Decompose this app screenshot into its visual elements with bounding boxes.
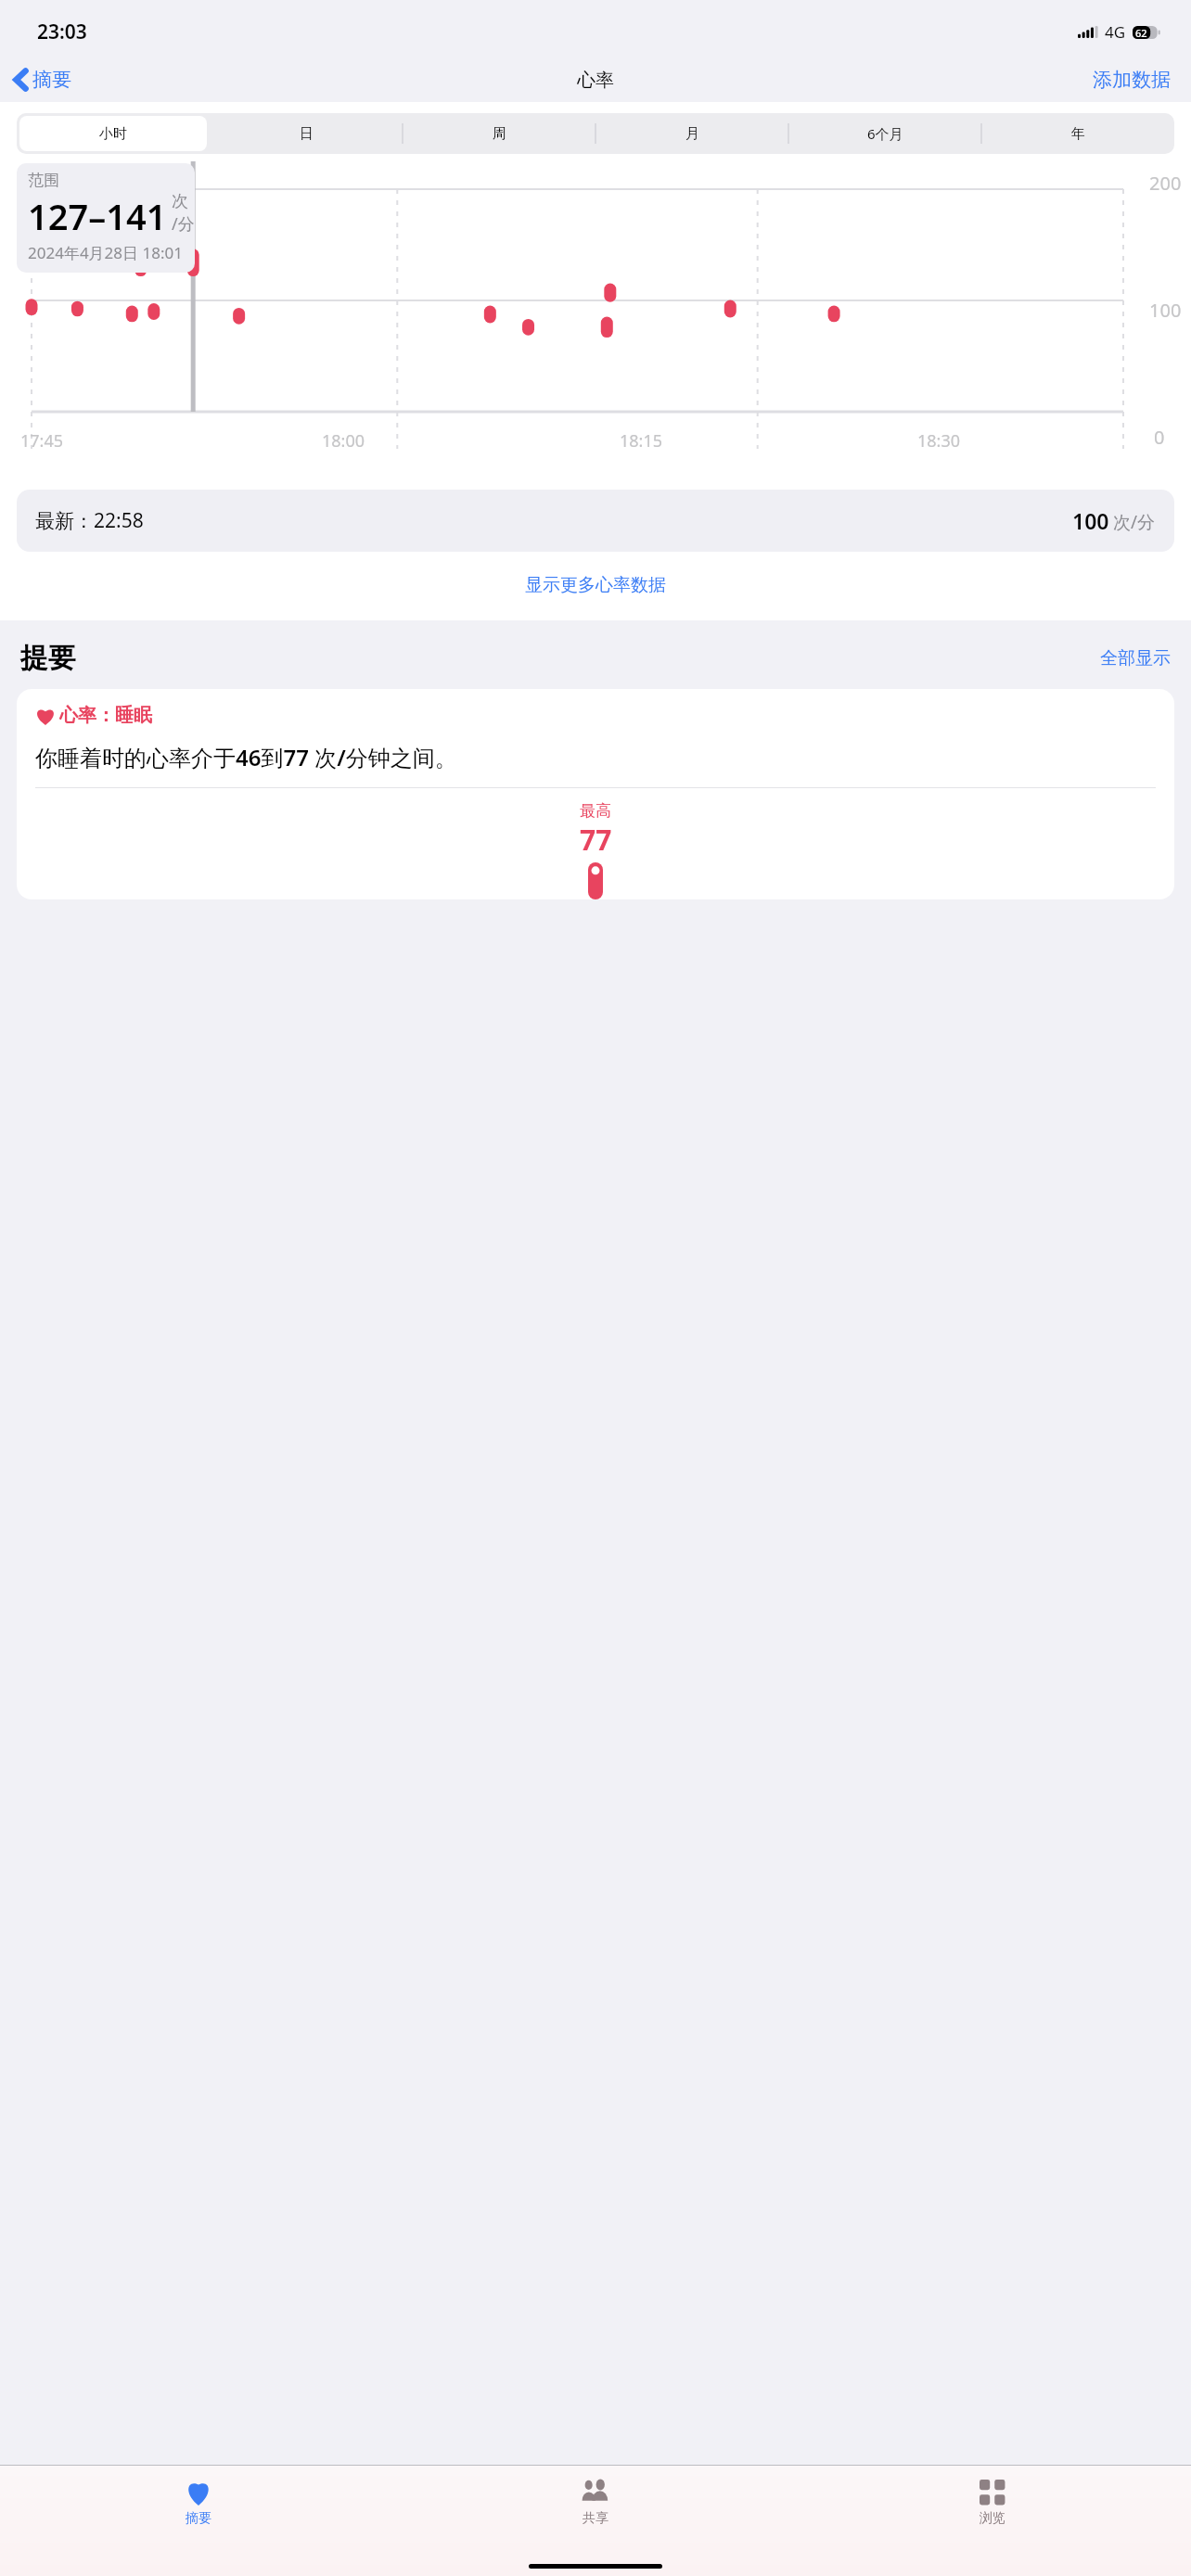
button[interactable]: 年 — [984, 116, 1172, 151]
button[interactable]: 全部显示 — [1100, 647, 1171, 670]
staticText: 次/分 — [172, 191, 186, 236]
button[interactable]: 显示更多心率数据 — [0, 568, 1191, 602]
staticText: 17:45 — [20, 429, 64, 453]
staticText: 0 — [1154, 425, 1165, 450]
staticText: 月 — [685, 125, 699, 143]
staticText: 127–141 — [28, 192, 167, 240]
staticText: 100 — [1072, 506, 1109, 535]
staticText: 2024年4月28日 18:01 — [28, 242, 183, 263]
staticText: 你睡着时的心率介于46到77 次/分钟之间。 — [35, 742, 457, 772]
staticText: 18:30 — [917, 429, 961, 453]
staticText: 共享 — [583, 2510, 608, 2527]
staticText: 日 — [300, 125, 314, 143]
button[interactable]: 共享 — [397, 2474, 794, 2531]
staticText: 62 — [1135, 26, 1147, 39]
staticText: 小时 — [99, 125, 127, 143]
staticText: 添加数据 — [1093, 68, 1171, 92]
button[interactable]: 心率：睡眠 — [17, 689, 1174, 899]
staticText: 年 — [1071, 125, 1085, 143]
button[interactable]: 日 — [212, 116, 400, 151]
staticText: 200 — [1149, 171, 1182, 196]
staticText: 23:03 — [37, 19, 87, 45]
staticText: 心率：睡眠 — [59, 704, 152, 727]
staticText: 最新：22:58 — [35, 507, 144, 534]
button[interactable]: 小时 — [19, 116, 207, 151]
staticText: 周 — [493, 125, 506, 143]
staticText: 6个月 — [867, 124, 903, 143]
staticText: 全部显示 — [1100, 647, 1171, 670]
staticText: 心率 — [577, 69, 614, 92]
staticText: 18:00 — [322, 429, 365, 453]
staticText: 显示更多心率数据 — [525, 574, 666, 596]
staticText: 77 — [580, 821, 612, 859]
staticText: 最高 — [580, 801, 611, 821]
staticText: 提要 — [20, 641, 76, 676]
staticText: 100 — [1149, 298, 1182, 323]
staticText: 浏览 — [980, 2510, 1005, 2527]
button[interactable]: 6个月 — [791, 116, 979, 151]
button[interactable]: 浏览 — [794, 2474, 1191, 2531]
button[interactable]: 添加数据 — [1093, 68, 1171, 92]
staticText: 范围 — [28, 171, 59, 190]
staticText: 18:15 — [620, 429, 663, 453]
button[interactable]: 月 — [598, 116, 786, 151]
button[interactable]: 周 — [405, 116, 593, 151]
button[interactable]: 摘要 — [13, 67, 71, 93]
button[interactable]: 最新：22:58 — [17, 490, 1174, 552]
staticText: 4G — [1105, 21, 1126, 43]
staticText: 摘要 — [32, 68, 71, 92]
staticText: 次/分 — [1113, 510, 1156, 534]
staticText: 摘要 — [186, 2510, 211, 2527]
button[interactable]: 摘要 — [0, 2474, 397, 2531]
